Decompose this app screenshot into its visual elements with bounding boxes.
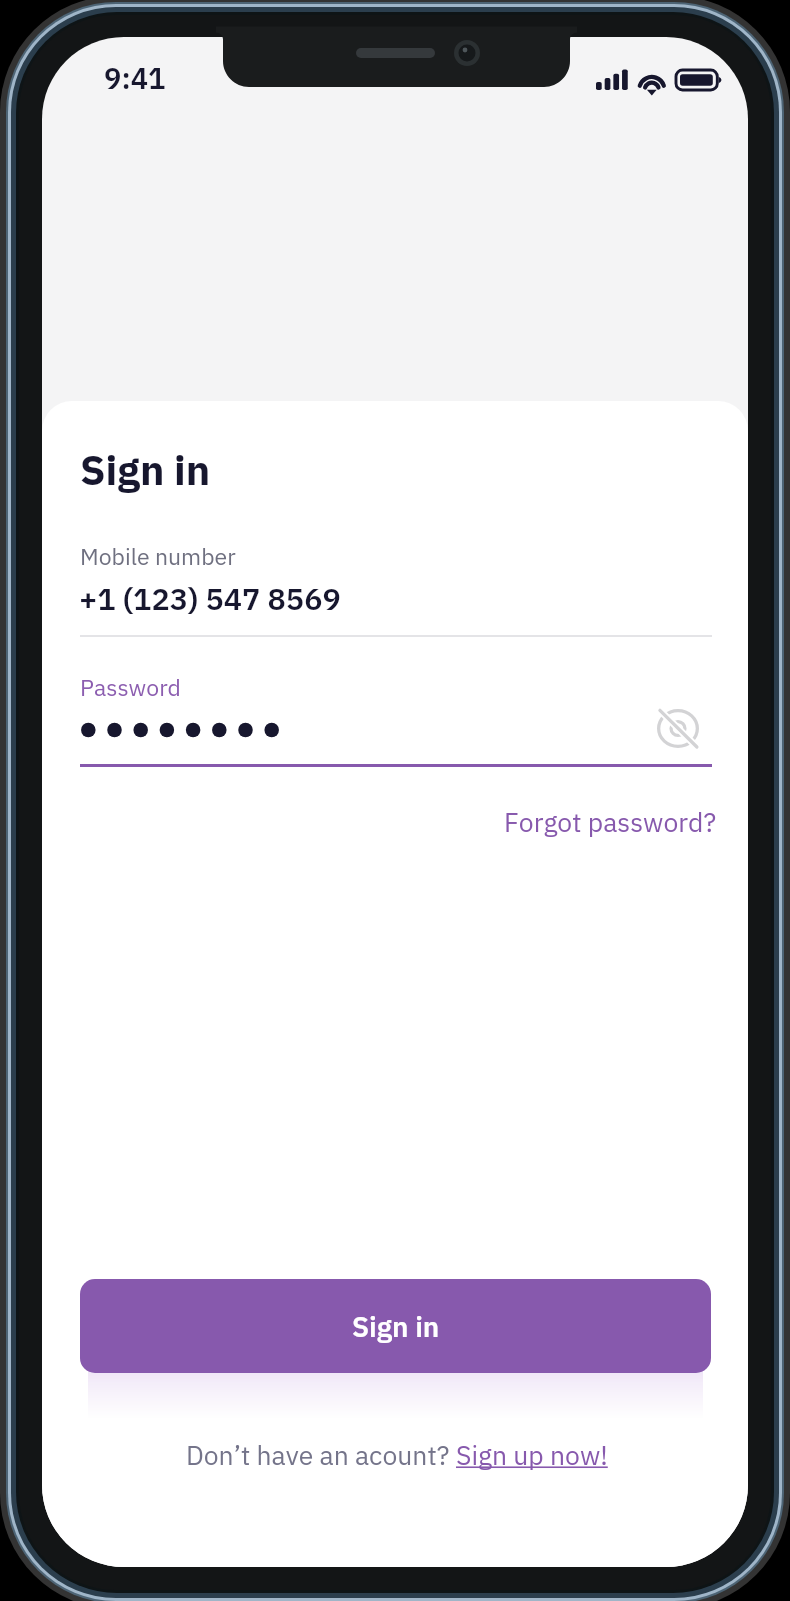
button[interactable]: Forgot password?: [400, 805, 613, 839]
button[interactable]: Sign in: [80, 1279, 711, 1373]
staticText: Password: [80, 672, 181, 702]
staticText: Sign in: [80, 443, 211, 496]
staticText: Don’t have an acount?: [186, 1438, 456, 1472]
staticText: Mobile number: [80, 541, 236, 571]
button[interactable]: Sign up now!: [456, 1438, 608, 1472]
staticText: Forgot password?: [504, 805, 717, 839]
button[interactable]: Show password: [649, 700, 706, 757]
staticText: 9:41: [104, 59, 166, 97]
staticText: +1 (123) 547 8569: [79, 579, 341, 619]
staticText: Sign in: [352, 1308, 440, 1344]
